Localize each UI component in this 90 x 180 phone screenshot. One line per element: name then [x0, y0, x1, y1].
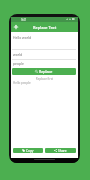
staticText: Replace [39, 69, 53, 74]
staticText: Share [58, 149, 67, 153]
staticText: world [13, 52, 23, 57]
button[interactable]: Replace [12, 68, 76, 75]
button[interactable]: Share [45, 148, 76, 153]
staticText: Replace Text [33, 25, 57, 30]
staticText: Hello people [13, 81, 31, 85]
staticText: Copy [26, 149, 34, 153]
button[interactable]: Copy [13, 148, 43, 153]
staticText: people [13, 61, 24, 66]
staticText: Replace first [11, 77, 78, 81]
button[interactable]: Add [13, 24, 19, 30]
staticText: Hello world [13, 35, 32, 40]
staticText: 9:41 [21, 18, 27, 22]
